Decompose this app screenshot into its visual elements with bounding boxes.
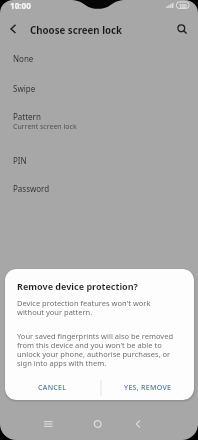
staticText: Choose screen lock (30, 24, 123, 37)
staticText: Current screen lock (13, 122, 77, 132)
button[interactable]: Pattern (0, 103, 198, 140)
button[interactable]: YES, REMOVE (100, 376, 194, 400)
staticText: 100 (179, 3, 187, 9)
button[interactable]: Password (0, 174, 198, 203)
button[interactable] (38, 414, 58, 434)
button[interactable] (4, 20, 22, 38)
button[interactable]: PIN (0, 146, 198, 175)
staticText: YES, REMOVE (124, 383, 172, 393)
staticText: Device protection features won't work wi… (17, 298, 151, 318)
staticText: None (13, 53, 34, 64)
staticText: CANCEL (38, 383, 67, 393)
staticText: Remove device protection? (17, 280, 138, 292)
button[interactable] (172, 19, 192, 39)
button[interactable] (128, 414, 148, 434)
button[interactable]: CANCEL (5, 376, 100, 400)
staticText: Password (13, 183, 50, 194)
staticText: PIN (13, 155, 27, 166)
button[interactable]: Swipe (0, 74, 198, 103)
staticText: 10:00 (10, 0, 31, 11)
button[interactable] (88, 414, 108, 434)
staticText: Pattern (13, 111, 41, 122)
staticText: Your saved fingerprints will also be rem… (17, 331, 174, 369)
staticText: Swipe (13, 83, 36, 94)
button[interactable]: None (0, 44, 198, 73)
